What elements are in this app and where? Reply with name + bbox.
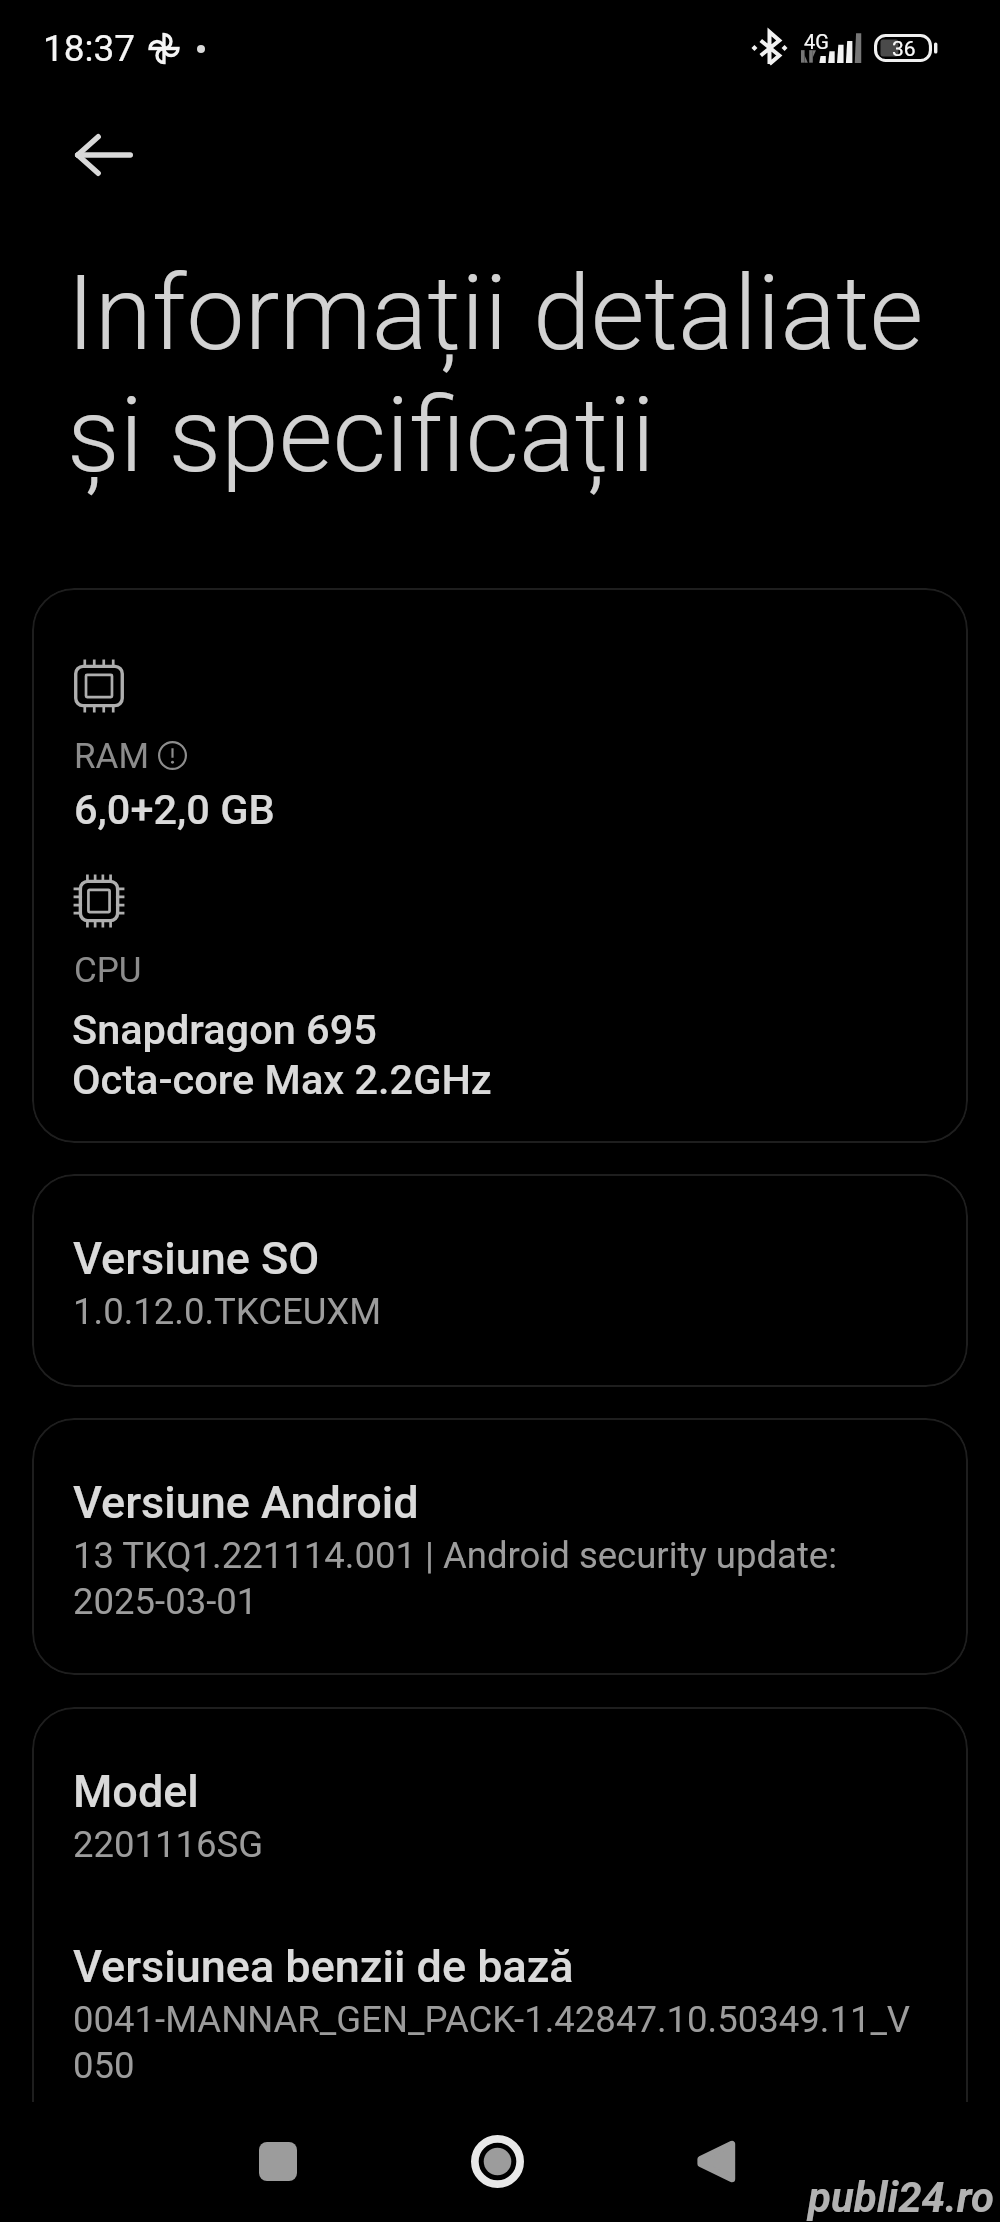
staticText: 2201116SG <box>73 1821 264 1867</box>
staticText: 0041-MANNAR_GEN_PACK-1.42847.10.50349.11… <box>73 1996 911 2088</box>
button[interactable]: Recent apps <box>218 2101 338 2221</box>
staticText: Model <box>73 1765 199 1818</box>
staticText: 6,0+2,0 GB <box>74 784 275 834</box>
staticText: 18:37 <box>43 29 136 69</box>
button[interactable]: Versiune SO <box>32 1174 968 1387</box>
staticText: 4G <box>804 30 829 53</box>
button[interactable]: Versiune Android <box>32 1418 968 1675</box>
button[interactable]: Model <box>32 1707 968 2222</box>
button[interactable]: Home <box>437 2101 557 2221</box>
button[interactable]: Back <box>72 123 136 187</box>
staticText: 13 TKQ1.221114.001 | Android security up… <box>73 1532 838 1624</box>
staticText: Snapdragon 695 Octa-core Max 2.2GHz <box>72 1004 492 1104</box>
staticText: Informații detaliate și specificații <box>67 252 924 496</box>
staticText: 1.0.12.0.TKCEUXM <box>73 1288 382 1334</box>
staticText: Versiunea benzii de bază <box>73 1940 574 1993</box>
staticText: Versiune Android <box>73 1476 419 1529</box>
staticText: RAM <box>74 735 149 777</box>
staticText: publi24.ro <box>808 2173 995 2222</box>
staticText: CPU <box>74 949 142 991</box>
button[interactable]: Back <box>654 2101 774 2221</box>
staticText: Versiune SO <box>73 1232 320 1285</box>
staticText: 36 <box>892 37 916 62</box>
button[interactable]: RAM <box>32 588 968 1143</box>
